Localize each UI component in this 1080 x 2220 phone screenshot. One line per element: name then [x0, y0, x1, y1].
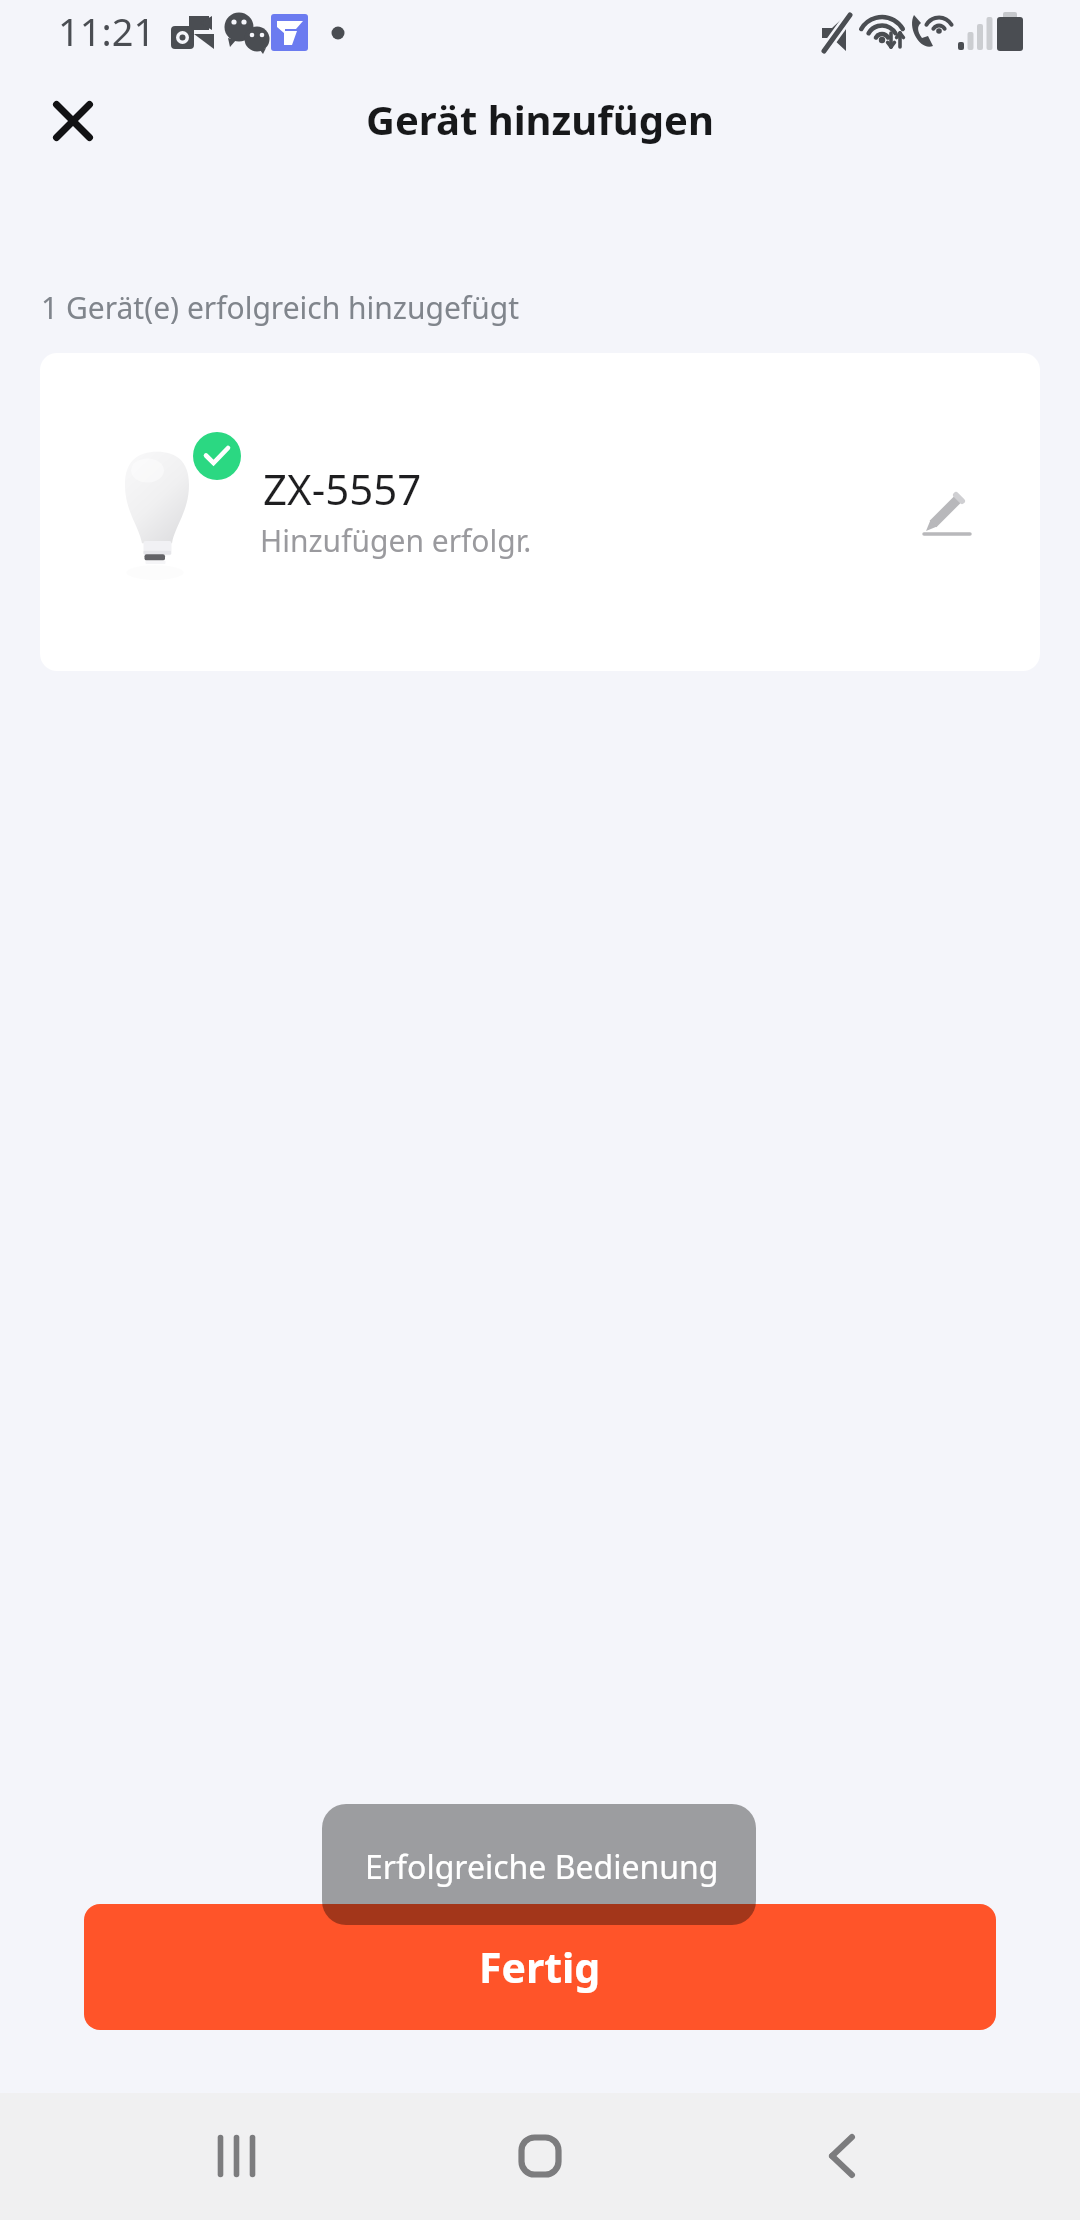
staticText: ZX-5557 — [263, 460, 422, 517]
button[interactable]: Fertig — [84, 1904, 996, 2030]
staticText: Gerät hinzufügen — [0, 92, 1080, 146]
staticText: 1 Gerät(e) erfolgreich hinzugefügt — [41, 287, 520, 328]
staticText: Erfolgreiche Bedienung — [365, 1845, 719, 1889]
button[interactable]: Back — [782, 2096, 902, 2216]
button[interactable]: ZX-5557 — [40, 353, 1040, 671]
button[interactable]: Home — [480, 2096, 600, 2216]
button[interactable]: Edit name — [885, 449, 1015, 579]
staticText: Fertig — [479, 1939, 601, 1995]
button[interactable]: Close — [33, 81, 113, 161]
button[interactable]: Recent apps — [177, 2096, 297, 2216]
staticText: Hinzufügen erfolgr. — [260, 520, 532, 561]
staticText: 11:21 — [58, 5, 156, 57]
